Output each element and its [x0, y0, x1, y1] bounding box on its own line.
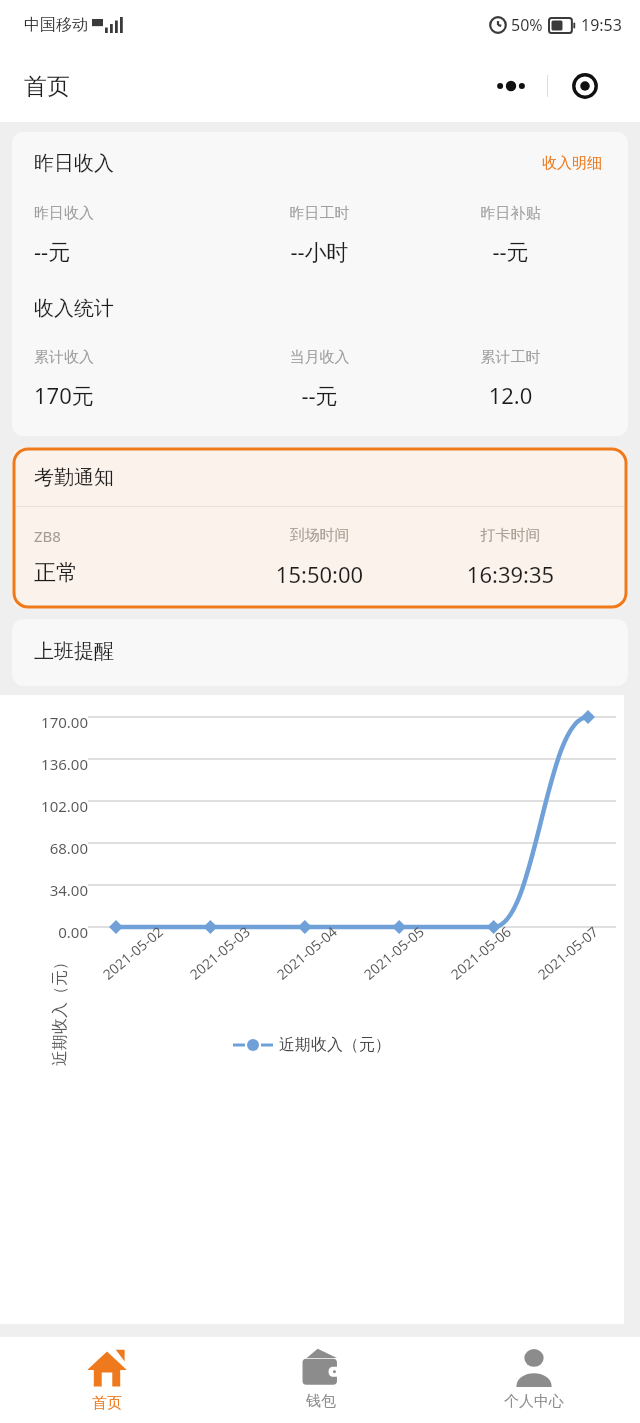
staticText: 170元 [34, 380, 224, 410]
staticText: 2021-05-06 [446, 921, 515, 983]
staticText: 2021-05-02 [98, 921, 167, 983]
staticText: 136.00 [41, 754, 88, 774]
button[interactable]: More [474, 62, 547, 110]
staticText: 昨日收入 [34, 151, 538, 176]
staticText: 19:53 [581, 14, 622, 36]
staticText: 102.00 [41, 796, 88, 816]
staticText: 上班提醒 [34, 639, 114, 664]
staticText: 12.0 [415, 380, 606, 410]
staticText: 68.00 [49, 838, 88, 858]
staticText: 近期收入（元） [50, 954, 70, 1066]
staticText: 正常 [34, 559, 224, 587]
staticText: 2021-05-07 [533, 921, 602, 983]
staticText: 0.00 [58, 922, 88, 942]
staticText: 打卡时间 [415, 526, 606, 545]
staticText: 考勤通知 [34, 465, 114, 490]
staticText: 个人中心 [504, 1392, 564, 1411]
staticText: 昨日收入 [34, 204, 224, 223]
staticText: 昨日工时 [224, 204, 415, 223]
staticText: 170.00 [41, 712, 88, 732]
staticText: 2021-05-05 [359, 921, 428, 983]
staticText: 到场时间 [224, 526, 415, 545]
staticText: --元 [224, 380, 415, 410]
staticText: 钱包 [306, 1392, 336, 1411]
button[interactable]: 钱包 [214, 1337, 427, 1423]
staticText: 34.00 [49, 880, 88, 900]
staticText: --元 [415, 236, 606, 266]
staticText: 中国移动 [24, 15, 88, 35]
staticText: 15:50:00 [224, 559, 415, 589]
button[interactable]: Close [548, 62, 622, 110]
button[interactable]: 考勤通知 [12, 447, 628, 609]
staticText: 2021-05-03 [185, 921, 254, 983]
staticText: --小时 [224, 236, 415, 266]
staticText: 收入统计 [34, 296, 114, 321]
staticText: 累计工时 [415, 348, 606, 367]
staticText: 当月收入 [224, 348, 415, 367]
staticText: 16:39:35 [415, 559, 606, 589]
button[interactable]: 首页 [0, 1337, 214, 1423]
staticText: --元 [34, 236, 224, 266]
staticText: 首页 [92, 1394, 122, 1413]
staticText: 近期收入（元） [279, 1035, 391, 1055]
staticText: 50% [511, 14, 543, 36]
staticText: 2021-05-04 [272, 921, 341, 983]
staticText: 昨日补贴 [415, 204, 606, 223]
staticText: ZB8 [34, 526, 224, 546]
button[interactable]: 收入明细 [538, 150, 606, 177]
button[interactable]: 个人中心 [427, 1337, 640, 1423]
staticText: 首页 [24, 72, 70, 101]
button[interactable]: 上班提醒 [12, 619, 628, 686]
staticText: 累计收入 [34, 348, 224, 367]
